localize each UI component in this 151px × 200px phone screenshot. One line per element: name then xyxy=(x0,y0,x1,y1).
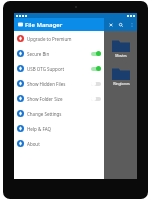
button[interactable]: More options xyxy=(127,20,136,29)
staticText: Change Settings xyxy=(27,111,101,117)
staticText: Show Hidden Files xyxy=(27,81,91,87)
staticText: Show Folder Size xyxy=(27,96,91,102)
button[interactable]: USB OTG Support xyxy=(14,61,104,76)
button[interactable]: Ringtones xyxy=(110,64,132,88)
staticText: Secure Bin xyxy=(27,51,91,57)
button[interactable]: Movies xyxy=(110,36,132,60)
button[interactable]: Show Folder Size xyxy=(14,91,104,106)
button[interactable]: Search xyxy=(116,20,125,29)
staticText: File Manager xyxy=(25,21,63,29)
staticText: About xyxy=(27,141,101,147)
button[interactable]: Change Settings xyxy=(14,106,104,121)
staticText: Help & FAQ xyxy=(27,126,101,132)
button[interactable]: About xyxy=(14,136,104,151)
button[interactable]: Toggle off xyxy=(91,81,101,86)
staticText: Upgrade to Premium xyxy=(27,36,101,42)
staticText: Movies xyxy=(115,53,127,58)
button[interactable]: Secure Bin xyxy=(14,46,104,61)
button[interactable]: Toggle on xyxy=(91,66,101,71)
button[interactable]: Help & FAQ xyxy=(14,121,104,136)
staticText: Ringtones xyxy=(113,81,130,86)
button[interactable]: Upgrade to Premium xyxy=(14,31,104,46)
button[interactable]: Toggle off xyxy=(91,96,101,101)
button[interactable]: Back xyxy=(106,20,115,29)
button[interactable]: Show Hidden Files xyxy=(14,76,104,91)
staticText: USB OTG Support xyxy=(27,66,91,72)
button[interactable]: Toggle on xyxy=(91,51,101,56)
